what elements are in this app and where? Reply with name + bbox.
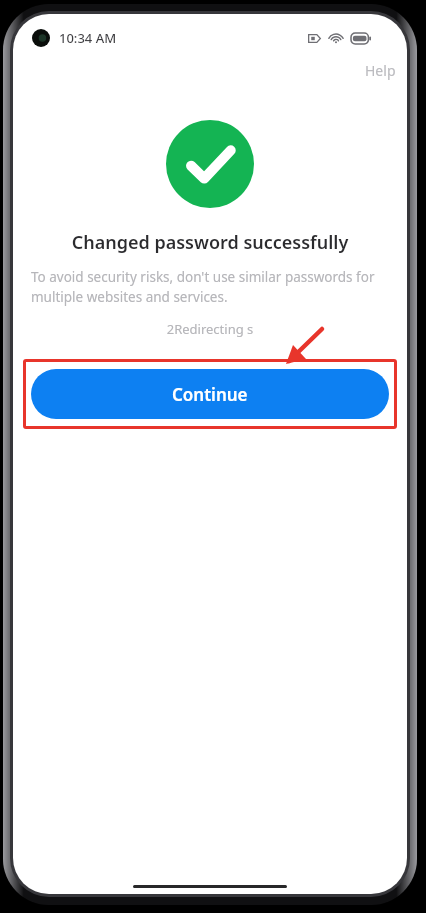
staticText: To avoid security risks, don't use simil… [31,268,389,306]
other: Wi-Fi [329,31,343,45]
staticText: 10:34 AM [59,29,117,47]
staticText: Changed password successfully [13,230,407,255]
staticText: Continue [172,383,248,406]
staticText: 2Redirecting s [13,320,407,338]
other: Battery [351,33,371,44]
other: SIM card [308,32,321,45]
button[interactable]: Continue [31,369,389,419]
staticText: Help [365,61,396,80]
button[interactable]: Help [359,56,402,85]
